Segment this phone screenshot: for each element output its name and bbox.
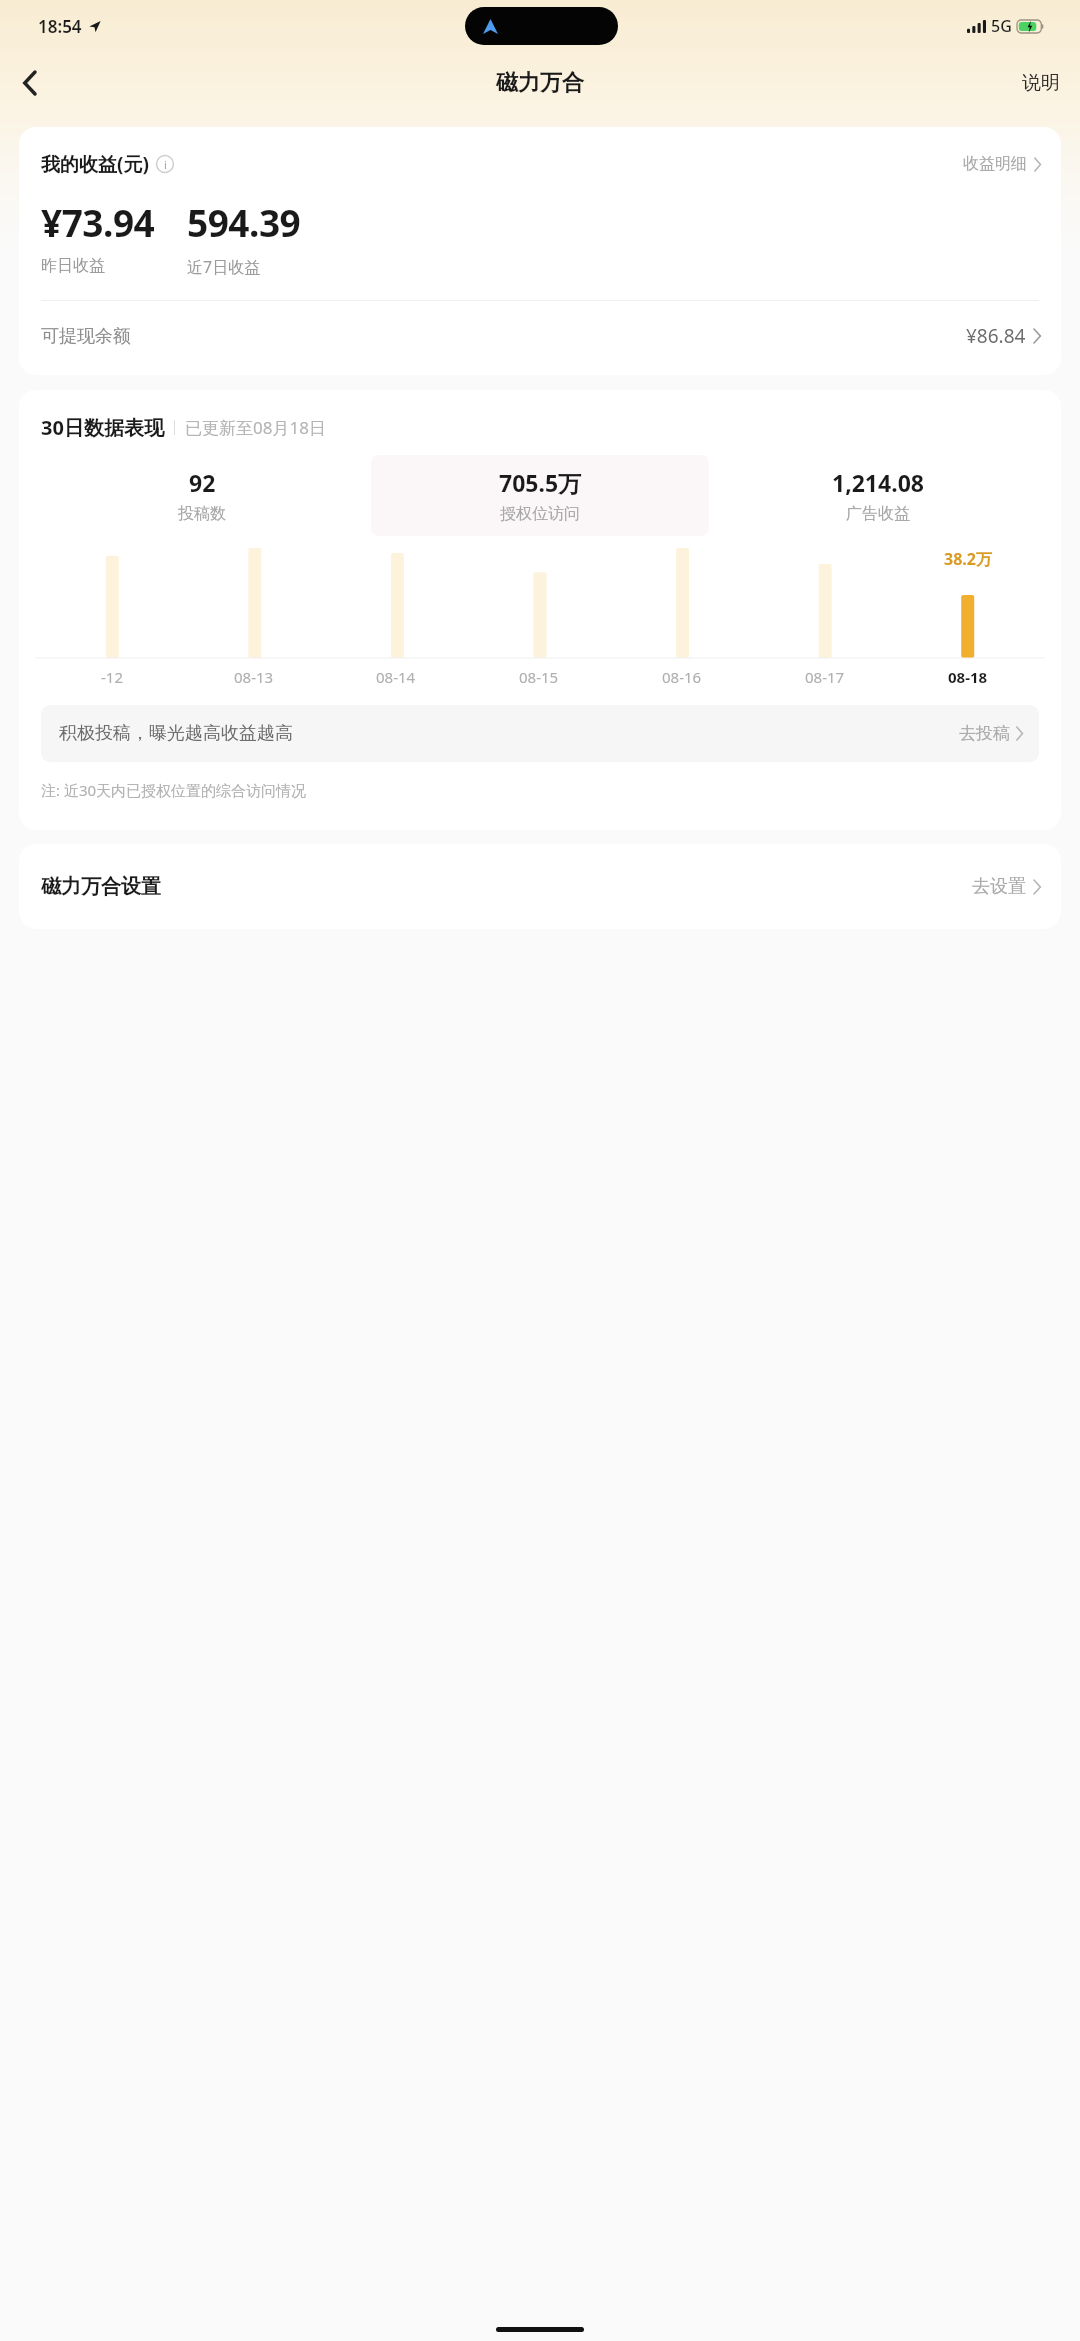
- staticText: 18:54: [38, 15, 82, 38]
- staticText: 授权位访问: [500, 504, 580, 524]
- staticText: 08-14: [376, 667, 416, 687]
- staticText: 705.5万: [499, 467, 582, 498]
- staticText: 5G: [991, 15, 1012, 37]
- staticText: -12: [101, 667, 123, 687]
- staticText: 08-17: [805, 667, 845, 687]
- staticText: 38.2万: [944, 548, 992, 570]
- staticText: 我的收益(元): [41, 151, 149, 177]
- staticText: ¥86.84: [966, 323, 1026, 349]
- staticText: 积极投稿，曝光越高收益越高: [59, 722, 293, 745]
- staticText: 近7日收益: [187, 256, 261, 278]
- staticText: 昨日收益: [41, 256, 105, 276]
- button[interactable]: 705.5万: [371, 455, 709, 536]
- button[interactable]: 1,214.08: [709, 455, 1047, 536]
- staticText: 去投稿: [959, 723, 1010, 744]
- staticText: 92: [189, 467, 216, 498]
- button[interactable]: 可提现余额: [19, 301, 1061, 375]
- button[interactable]: 收益明细: [963, 154, 1041, 174]
- button[interactable]: Back: [6, 59, 54, 107]
- staticText: 收益明细: [963, 154, 1027, 174]
- staticText: 广告收益: [846, 504, 910, 524]
- button[interactable]: 92: [33, 455, 371, 536]
- staticText: 08-18: [948, 667, 988, 687]
- button[interactable]: 磁力万合设置: [19, 844, 1061, 929]
- staticText: 注: 近30天内已授权位置的综合访问情况: [41, 780, 307, 800]
- button[interactable]: 说明: [1002, 59, 1080, 107]
- staticText: 说明: [1022, 71, 1060, 95]
- staticText: 1,214.08: [832, 467, 924, 498]
- staticText: 已更新至08月18日: [185, 416, 326, 439]
- staticText: 08-16: [662, 667, 702, 687]
- staticText: 30日数据表现: [41, 414, 164, 441]
- staticText: 磁力万合: [496, 69, 584, 97]
- button[interactable]: Info: [156, 155, 174, 173]
- staticText: 可提现余额: [41, 325, 131, 348]
- staticText: 去设置: [972, 875, 1026, 898]
- button[interactable]: 积极投稿，曝光越高收益越高: [41, 705, 1039, 762]
- staticText: 594.39: [187, 197, 301, 247]
- staticText: i: [164, 157, 167, 172]
- staticText: 08-13: [234, 667, 274, 687]
- staticText: ¥73.94: [41, 197, 155, 247]
- staticText: 投稿数: [178, 504, 226, 524]
- staticText: 08-15: [519, 667, 559, 687]
- staticText: 磁力万合设置: [41, 874, 161, 899]
